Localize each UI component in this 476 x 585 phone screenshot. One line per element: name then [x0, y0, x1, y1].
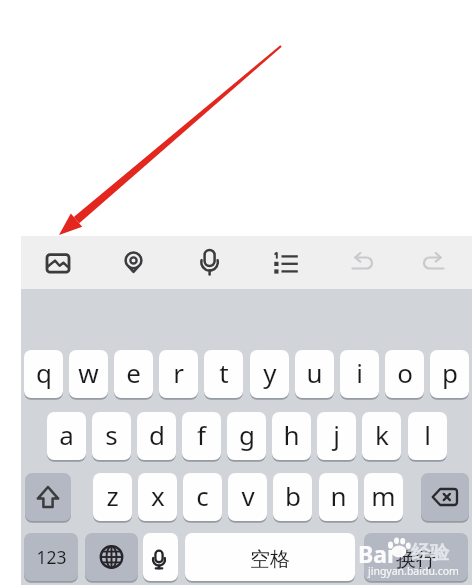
- button[interactable]: [25, 473, 71, 521]
- staticText: x: [151, 478, 165, 513]
- button[interactable]: [421, 473, 469, 521]
- button[interactable]: e: [114, 350, 153, 398]
- button[interactable]: x: [138, 473, 177, 521]
- button[interactable]: [407, 238, 461, 287]
- button[interactable]: h: [272, 412, 311, 460]
- staticText: m: [371, 478, 396, 513]
- staticText: d: [149, 417, 165, 452]
- staticText: r: [173, 355, 184, 390]
- staticText: e: [126, 355, 141, 390]
- staticText: 换行: [396, 547, 436, 572]
- button[interactable]: [335, 238, 389, 287]
- staticText: j: [333, 417, 340, 452]
- button[interactable]: t: [204, 350, 243, 398]
- button[interactable]: [143, 533, 178, 581]
- button[interactable]: [31, 238, 85, 287]
- staticText: o: [397, 355, 413, 390]
- staticText: y: [263, 355, 277, 390]
- button[interactable]: j: [317, 412, 356, 460]
- staticText: n: [330, 478, 347, 513]
- staticText: t: [219, 355, 229, 390]
- staticText: s: [105, 417, 118, 452]
- button[interactable]: [85, 533, 138, 581]
- staticText: i: [356, 355, 363, 390]
- button[interactable]: i: [340, 350, 379, 398]
- button[interactable]: p: [430, 350, 469, 398]
- staticText: a: [59, 417, 74, 452]
- staticText: 经验: [411, 541, 449, 565]
- button[interactable]: n: [319, 473, 358, 521]
- staticText: g: [239, 417, 255, 452]
- button[interactable]: k: [362, 412, 401, 460]
- staticText: c: [196, 478, 209, 513]
- button[interactable]: w: [69, 350, 108, 398]
- button[interactable]: 空格: [185, 533, 355, 581]
- staticText: jingyan.baidu.com: [368, 564, 459, 578]
- button[interactable]: q: [24, 350, 63, 398]
- button[interactable]: b: [273, 473, 312, 521]
- button[interactable]: m: [364, 473, 403, 521]
- button[interactable]: c: [183, 473, 222, 521]
- staticText: z: [106, 478, 119, 513]
- button[interactable]: o: [385, 350, 424, 398]
- button[interactable]: f: [182, 412, 221, 460]
- staticText: l: [424, 417, 431, 452]
- staticText: b: [285, 478, 301, 513]
- button[interactable]: [182, 238, 236, 287]
- button[interactable]: r: [159, 350, 198, 398]
- staticText: q: [36, 355, 52, 390]
- button[interactable]: y: [250, 350, 289, 398]
- staticText: f: [197, 417, 206, 452]
- staticText: h: [283, 417, 300, 452]
- button[interactable]: 123: [24, 533, 78, 581]
- staticText: u: [306, 355, 323, 390]
- button[interactable]: d: [137, 412, 176, 460]
- staticText: p: [442, 355, 458, 390]
- button[interactable]: z: [93, 473, 132, 521]
- button[interactable]: [259, 238, 313, 287]
- staticText: v: [241, 478, 255, 513]
- staticText: k: [375, 417, 389, 452]
- button[interactable]: v: [228, 473, 267, 521]
- staticText: 123: [36, 545, 67, 569]
- staticText: w: [78, 355, 99, 390]
- button[interactable]: g: [227, 412, 266, 460]
- staticText: 空格: [250, 547, 290, 572]
- staticText: Bai: [358, 538, 394, 569]
- button[interactable]: 换行: [364, 533, 468, 581]
- button[interactable]: a: [47, 412, 86, 460]
- button[interactable]: s: [92, 412, 131, 460]
- button[interactable]: [107, 238, 161, 287]
- button[interactable]: l: [408, 412, 447, 460]
- button[interactable]: u: [295, 350, 334, 398]
